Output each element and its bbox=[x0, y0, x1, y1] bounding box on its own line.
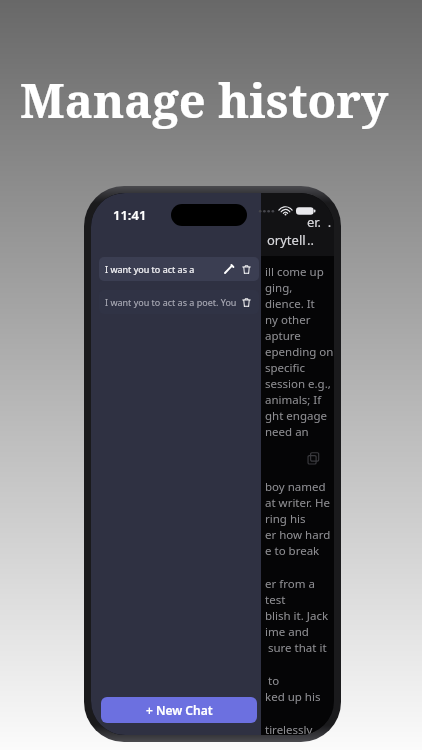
staticText: need an bbox=[265, 424, 309, 440]
staticText: e to break bbox=[265, 543, 320, 559]
staticText: ny other type bbox=[265, 312, 334, 328]
staticText: + New Chat bbox=[146, 702, 213, 718]
staticText: Manage history bbox=[20, 68, 389, 132]
staticText: ring his heart bbox=[265, 511, 334, 527]
staticText: boy named bbox=[265, 479, 326, 495]
staticText: ked up his bbox=[265, 689, 321, 705]
staticText: specific bbox=[265, 360, 305, 376]
button[interactable]: Delete chat bbox=[239, 295, 253, 309]
staticText: 11:41 bbox=[113, 206, 147, 224]
staticText: er from a bbox=[265, 576, 315, 592]
button[interactable]: I want you to act as a poet. You wil... bbox=[99, 290, 259, 314]
staticText: ime and bbox=[265, 624, 309, 640]
staticText: session e.g., bbox=[265, 376, 331, 392]
staticText: epending on bbox=[265, 344, 334, 360]
staticText: orytell bbox=[267, 231, 306, 249]
staticText: animals; If bbox=[265, 392, 322, 408]
staticText: to bbox=[265, 673, 280, 689]
staticText: er how hard bbox=[265, 527, 331, 543]
staticText: ght engage bbox=[265, 408, 327, 424]
staticText: I want you to act as a storytell... bbox=[105, 263, 222, 275]
button[interactable]: I want you to act as a storytell... bbox=[99, 257, 259, 281]
staticText: I want you to act as a poet. You wil... bbox=[105, 296, 239, 308]
staticText: ill come up bbox=[265, 264, 324, 280]
button[interactable]: Rename chat bbox=[222, 262, 236, 276]
staticText: test bbox=[265, 592, 286, 608]
staticText: sure that it bbox=[265, 640, 327, 656]
staticText: ging, bbox=[265, 280, 293, 296]
staticText: apture bbox=[265, 328, 301, 344]
staticText: at writer. He bbox=[265, 495, 330, 511]
staticText: dience. It can bbox=[265, 296, 334, 312]
button[interactable]: Delete chat bbox=[239, 262, 253, 276]
staticText: tirelessly. bbox=[265, 722, 316, 735]
staticText: blish it. Jack bbox=[265, 608, 329, 624]
staticText: er. ... bbox=[307, 213, 334, 249]
button[interactable]: + New Chat bbox=[101, 697, 257, 723]
